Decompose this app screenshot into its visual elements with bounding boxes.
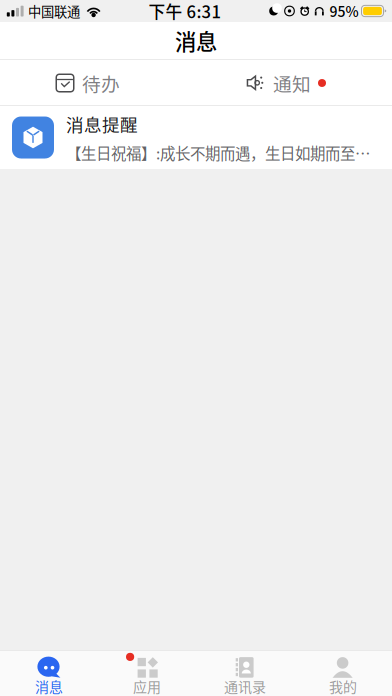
staticText: 下午 6:31 (148, 0, 221, 23)
staticText: 消息提醒 (66, 111, 138, 137)
staticText: 【生日祝福】:成长不期而遇，生日如期而至，… (66, 141, 372, 164)
button[interactable]: 我的 (294, 651, 392, 696)
staticText: 通讯录 (224, 676, 266, 696)
button[interactable]: 消息 (0, 651, 98, 696)
button[interactable]: 消息提醒 (0, 106, 392, 169)
button[interactable]: 待办 (56, 60, 120, 106)
staticText: 95% (329, 1, 358, 21)
staticText: 中国联通 (28, 1, 80, 21)
button[interactable]: 通讯录 (196, 651, 294, 696)
staticText: 待办 (82, 69, 120, 96)
staticText: 通知 (273, 69, 311, 96)
staticText: 应用 (133, 676, 161, 696)
button[interactable]: 应用 (98, 651, 196, 696)
staticText: 消息 (175, 25, 217, 56)
staticText: 我的 (329, 676, 357, 696)
button[interactable]: 通知 (248, 60, 326, 106)
staticText: 消息 (35, 676, 63, 696)
